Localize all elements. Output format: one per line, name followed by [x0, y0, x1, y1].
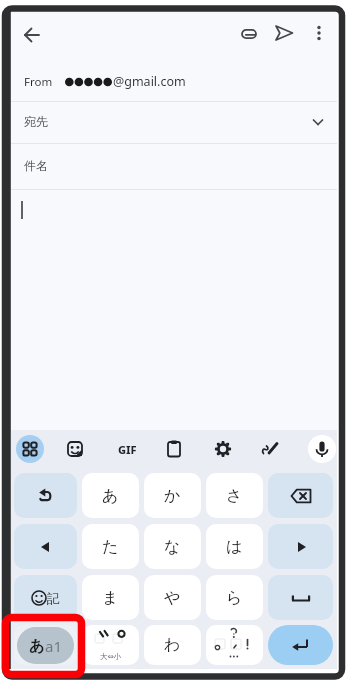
button[interactable]: や — [144, 575, 201, 620]
staticText: あ — [29, 637, 45, 656]
button[interactable] — [259, 437, 283, 461]
staticText: ら — [226, 588, 243, 608]
staticText: や — [164, 588, 181, 608]
button[interactable] — [308, 435, 336, 463]
staticText: 件名 — [24, 158, 48, 173]
button[interactable]: た — [82, 524, 139, 569]
button[interactable]: は — [206, 524, 263, 569]
staticText: 大⇔小 — [100, 652, 122, 661]
staticText: わ — [164, 635, 181, 655]
button[interactable]: ま — [82, 575, 139, 620]
button[interactable] — [16, 435, 44, 463]
staticText: a1 — [45, 636, 62, 656]
button[interactable] — [268, 625, 333, 665]
staticText: か — [164, 486, 181, 506]
button[interactable] — [211, 437, 235, 461]
button[interactable]: あ — [82, 473, 139, 518]
staticText: た — [102, 537, 119, 557]
staticText: 宛先 — [24, 114, 48, 129]
button[interactable]: GIF — [113, 441, 142, 457]
staticText: あ — [102, 486, 119, 506]
button[interactable] — [309, 113, 327, 131]
button[interactable] — [14, 524, 77, 569]
button[interactable] — [206, 625, 263, 665]
staticText: な — [164, 537, 181, 557]
staticText: は — [226, 537, 243, 557]
button[interactable]: か — [144, 473, 201, 518]
staticText: @gmail.com — [113, 73, 186, 90]
button[interactable] — [268, 524, 333, 569]
button[interactable] — [268, 575, 333, 620]
button[interactable]: あ — [14, 625, 77, 665]
button[interactable] — [162, 437, 186, 461]
button[interactable]: さ — [206, 473, 263, 518]
button[interactable]: 大⇔小 — [82, 625, 139, 665]
button[interactable]: 件名 — [11, 144, 337, 189]
button[interactable]: 宛先 — [11, 102, 337, 143]
staticText: GIF — [118, 442, 137, 457]
button[interactable]: な — [144, 524, 201, 569]
button[interactable]: ら — [206, 575, 263, 620]
staticText: ま — [102, 588, 119, 608]
button[interactable] — [63, 437, 87, 461]
button[interactable] — [308, 22, 330, 44]
button[interactable]: 記 — [14, 575, 77, 620]
button[interactable] — [21, 24, 43, 46]
staticText: From — [24, 74, 53, 90]
button[interactable] — [238, 23, 260, 45]
button[interactable] — [14, 473, 77, 518]
button[interactable]: わ — [144, 625, 201, 665]
button[interactable] — [268, 473, 333, 518]
button[interactable] — [273, 22, 295, 44]
staticText: 記 — [47, 590, 60, 606]
staticText: さ — [226, 486, 243, 506]
